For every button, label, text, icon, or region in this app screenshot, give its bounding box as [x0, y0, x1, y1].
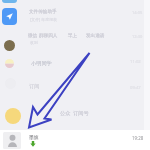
staticText: 墨旗	[29, 134, 39, 140]
staticText: 公众	[60, 110, 71, 117]
staticText: 微信	[28, 33, 38, 39]
staticText: 19:28	[132, 135, 144, 141]
staticText: 早上	[68, 33, 78, 39]
staticText: 群聊四人	[39, 33, 58, 39]
staticText: 12:30	[132, 34, 143, 39]
button[interactable]: Download	[30, 141, 36, 147]
button[interactable]	[2, 8, 17, 25]
staticText: 09:47	[130, 85, 141, 91]
staticText: 11:02	[130, 59, 141, 65]
staticText: 订阅	[29, 83, 40, 90]
button[interactable]	[5, 108, 21, 124]
staticText: 发出邀请	[86, 33, 105, 39]
staticText: 小明同学	[31, 60, 52, 67]
staticText: 收到	[30, 40, 38, 45]
staticText: 文件传输助手	[29, 9, 57, 15]
staticText: 14:05	[132, 10, 143, 15]
button[interactable]	[5, 59, 14, 68]
button[interactable]	[4, 40, 15, 51]
staticText: [文件] 年度报表	[30, 17, 57, 22]
staticText: 订阅号	[73, 110, 89, 117]
button[interactable]: Profile	[3, 132, 21, 149]
